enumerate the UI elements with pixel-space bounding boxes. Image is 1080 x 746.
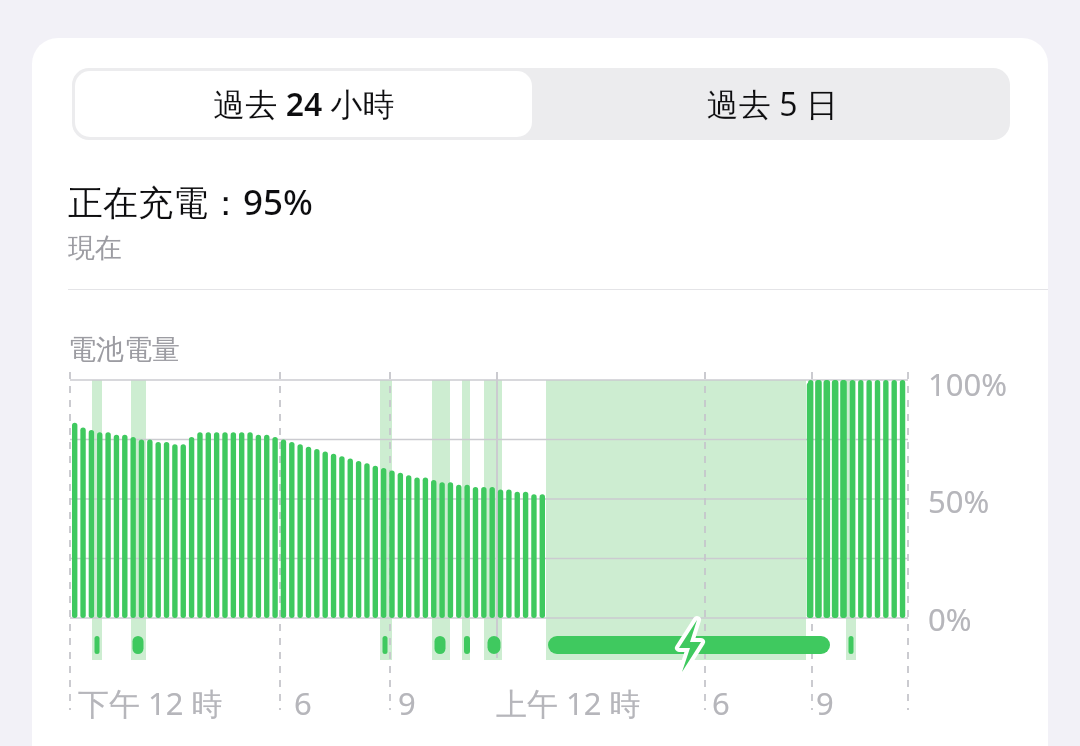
staticText: 6: [712, 682, 730, 724]
staticText: 正在充電：95%: [68, 178, 313, 226]
staticText: 50%: [928, 480, 990, 522]
button[interactable]: 過去 24 小時: [75, 71, 532, 137]
staticText: 現在: [68, 231, 122, 265]
staticText: 9: [398, 682, 416, 724]
staticText: 下午 12 時: [78, 682, 223, 724]
button[interactable]: 過去 5 日: [535, 68, 1010, 140]
staticText: 0%: [928, 598, 972, 640]
staticText: 6: [294, 682, 312, 724]
staticText: 100%: [928, 363, 1007, 405]
staticText: 9: [816, 682, 834, 724]
staticText: 電池電量: [68, 332, 180, 367]
staticText: 過去 5 日: [707, 82, 838, 126]
staticText: 過去 24 小時: [213, 82, 395, 126]
staticText: 上午 12 時: [496, 682, 641, 724]
